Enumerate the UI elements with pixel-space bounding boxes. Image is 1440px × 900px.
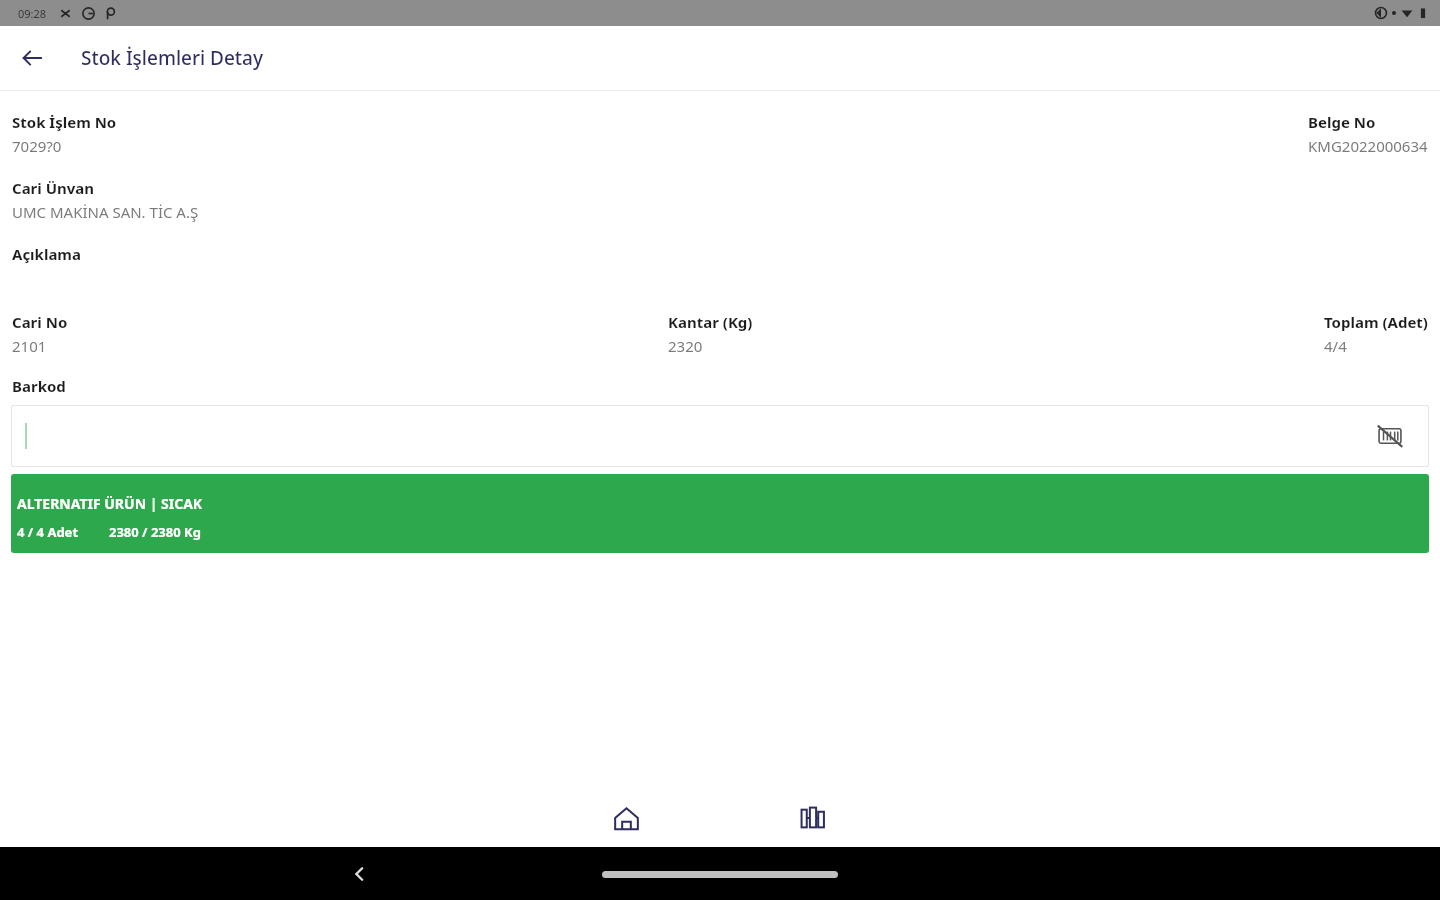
staticText: 2380 / 2380 Kg [109,523,201,541]
staticText: 2320 [668,336,703,356]
button[interactable]: Warehouse [787,792,839,844]
staticText: UMC MAKİNA SAN. TİC A.Ş [12,202,199,222]
staticText: Stok İşlemleri Detay [81,45,264,71]
staticText: KMG2022000634 [1308,136,1428,156]
staticText: 2101 [12,336,47,356]
staticText: Barkod [12,376,66,396]
staticText: Belge No [1308,112,1376,132]
button[interactable]: Back [338,852,382,896]
button[interactable]: Barcode scanner off [1373,419,1407,453]
staticText: Stok İşlem No [12,112,117,132]
staticText: Cari No [12,312,68,332]
staticText: 7029?0 [12,136,62,156]
staticText: ALTERNATIF ÜRÜN | SICAK [17,494,203,513]
staticText: Kantar (Kg) [668,312,753,332]
button[interactable]: Back [10,36,54,80]
staticText: 4/4 [1324,336,1347,356]
button[interactable]: Home gesture [602,871,838,878]
button[interactable]: Barcode scanner off [11,405,1429,467]
staticText: Toplam (Adet) [1324,312,1428,332]
button[interactable]: Home [600,792,652,844]
staticText: Açıklama [12,244,81,264]
button[interactable]: ALTERNATIF ÜRÜN | SICAK [11,474,1429,553]
staticText: 4 / 4 Adet [17,523,79,541]
staticText: 09:28 [18,6,47,21]
staticText: Cari Ünvan [12,178,95,198]
